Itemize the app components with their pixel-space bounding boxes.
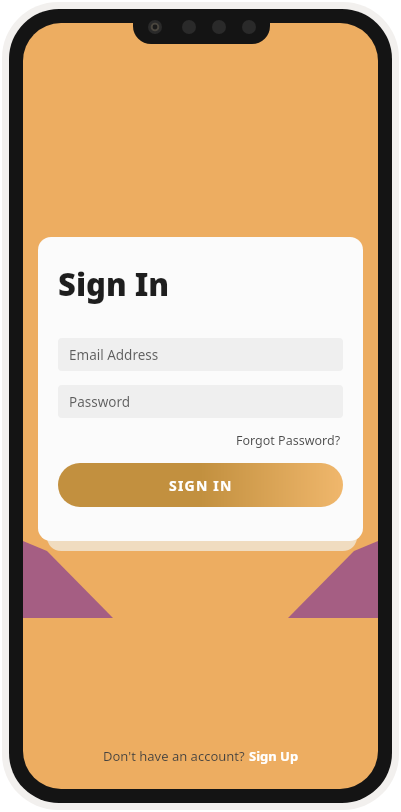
button[interactable]: Don't have an account? [95,741,307,771]
button[interactable]: SIGN IN [58,463,343,507]
button[interactable]: Forgot Password? [234,429,343,452]
staticText: Sign In [58,263,170,305]
button[interactable]: Email Address [58,338,343,371]
staticText: Forgot Password? [236,432,341,449]
staticText: SIGN IN [169,476,233,495]
staticText: Sign Up [249,747,299,765]
staticText: Password [69,393,131,411]
button[interactable]: Password [58,385,343,418]
staticText: Don't have an account? [103,747,249,765]
staticText: Email Address [69,346,159,364]
